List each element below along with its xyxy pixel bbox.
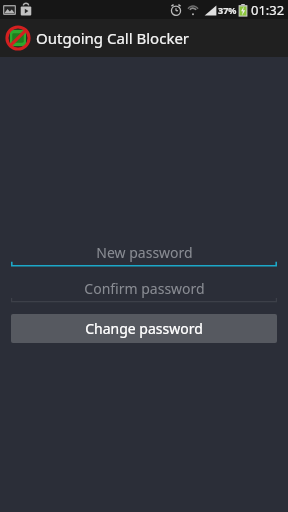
staticText: Confirm password: [84, 279, 205, 298]
staticText: 37%: [218, 4, 237, 16]
staticText: Change password: [85, 319, 203, 338]
staticText: Outgoing Call Blocker: [36, 28, 190, 48]
staticText: 01:32: [251, 1, 285, 19]
button[interactable]: Confirm password: [11, 276, 277, 301]
button[interactable]: Change password: [11, 314, 277, 343]
staticText: New password: [96, 243, 193, 262]
button[interactable]: New password: [11, 240, 277, 265]
